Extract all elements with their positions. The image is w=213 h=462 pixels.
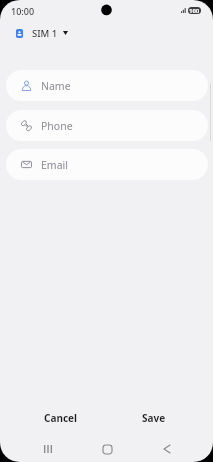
button[interactable]: SIM 1 bbox=[0, 24, 78, 42]
button[interactable]: Recent apps bbox=[26, 436, 69, 462]
button[interactable]: Cancel bbox=[37, 406, 85, 430]
button[interactable]: Name bbox=[6, 70, 208, 101]
button[interactable]: Email bbox=[6, 149, 208, 180]
staticText: Cancel bbox=[44, 411, 78, 425]
button[interactable]: Phone bbox=[6, 110, 208, 141]
staticText: 10:00 bbox=[11, 5, 35, 17]
button[interactable]: Home bbox=[86, 436, 128, 462]
staticText: SIM 1 bbox=[32, 27, 58, 40]
button[interactable]: Save bbox=[135, 406, 173, 430]
staticText: Phone bbox=[41, 119, 73, 133]
button[interactable]: Back bbox=[146, 436, 188, 462]
staticText: Name bbox=[41, 79, 71, 93]
staticText: Email bbox=[41, 158, 68, 172]
staticText: 100 bbox=[189, 7, 200, 14]
staticText: Save bbox=[142, 411, 166, 425]
